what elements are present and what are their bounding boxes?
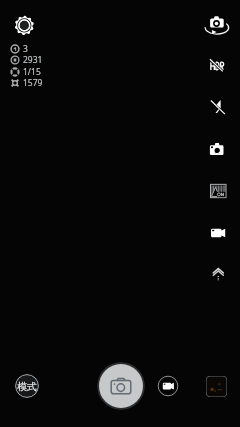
button[interactable]: Shutter <box>97 362 145 410</box>
button[interactable]: Record video <box>157 375 179 397</box>
button[interactable]: 模式 <box>15 374 39 398</box>
button[interactable]: Photo mode <box>202 134 234 166</box>
staticText: 1/15 <box>23 66 41 77</box>
staticText: 1579 <box>23 77 43 88</box>
button[interactable]: Settings <box>10 11 38 39</box>
staticText: 3 <box>23 43 28 54</box>
button[interactable]: Video mode <box>202 217 234 249</box>
button[interactable]: Scene detection on <box>202 175 234 207</box>
button[interactable]: Flash off <box>202 90 234 122</box>
button[interactable]: Gallery <box>206 376 227 397</box>
button[interactable]: More options <box>202 257 234 289</box>
button[interactable]: Switch camera <box>202 7 234 39</box>
button[interactable]: HDR off <box>202 50 234 82</box>
staticText: 2931 <box>23 54 43 65</box>
staticText: 模式 <box>17 380 37 393</box>
